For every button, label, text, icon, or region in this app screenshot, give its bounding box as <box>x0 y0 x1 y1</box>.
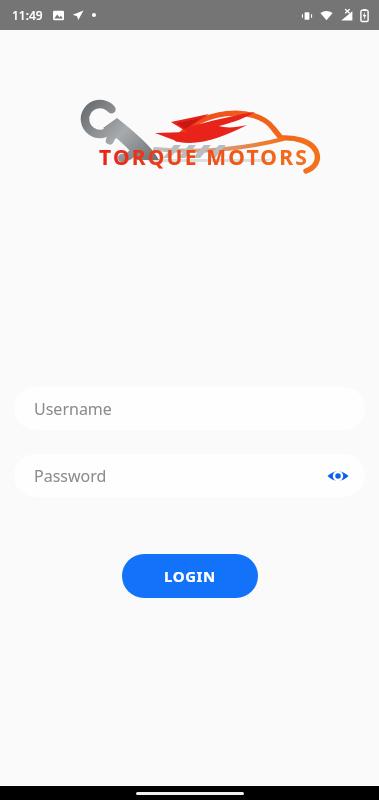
button[interactable]: Username <box>14 387 365 430</box>
other: Torque Motors logo <box>59 92 321 174</box>
staticText: Password <box>34 465 107 487</box>
button[interactable]: Show password <box>321 459 355 493</box>
button[interactable]: LOGIN <box>122 554 258 598</box>
staticText: TORQUE MOTORS <box>99 143 309 172</box>
button[interactable]: Password <box>14 454 365 497</box>
staticText: Username <box>34 398 112 420</box>
staticText: LOGIN <box>164 566 216 586</box>
staticText: 11:49 <box>12 7 43 23</box>
